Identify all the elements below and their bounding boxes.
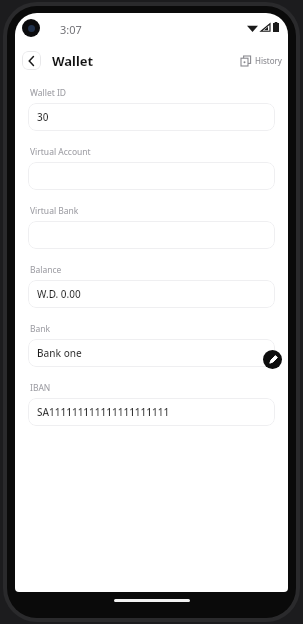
staticText: Virtual Account bbox=[30, 146, 91, 158]
staticText: 3:07 bbox=[60, 22, 82, 37]
button[interactable]: History bbox=[241, 55, 282, 66]
button[interactable]: Bank one bbox=[28, 339, 275, 367]
button[interactable]: Edit bbox=[263, 350, 282, 369]
staticText: W.D. 0.00 bbox=[37, 287, 81, 301]
staticText: Virtual Bank bbox=[30, 205, 79, 217]
staticText: IBAN bbox=[30, 382, 51, 394]
button[interactable]: 30 bbox=[28, 103, 275, 131]
staticText: Wallet bbox=[52, 52, 94, 70]
staticText: History bbox=[255, 55, 282, 66]
staticText: Wallet ID bbox=[30, 87, 67, 99]
button[interactable] bbox=[28, 221, 275, 249]
staticText: SA111111111111111111111 bbox=[37, 405, 170, 419]
button[interactable]: SA111111111111111111111 bbox=[28, 398, 275, 426]
staticText: Bank bbox=[30, 323, 51, 335]
button[interactable] bbox=[28, 162, 275, 190]
button[interactable]: Back bbox=[22, 51, 41, 70]
staticText: 30 bbox=[37, 110, 49, 124]
button[interactable]: W.D. 0.00 bbox=[28, 280, 275, 308]
staticText: Balance bbox=[30, 264, 62, 276]
staticText: Bank one bbox=[37, 346, 82, 360]
